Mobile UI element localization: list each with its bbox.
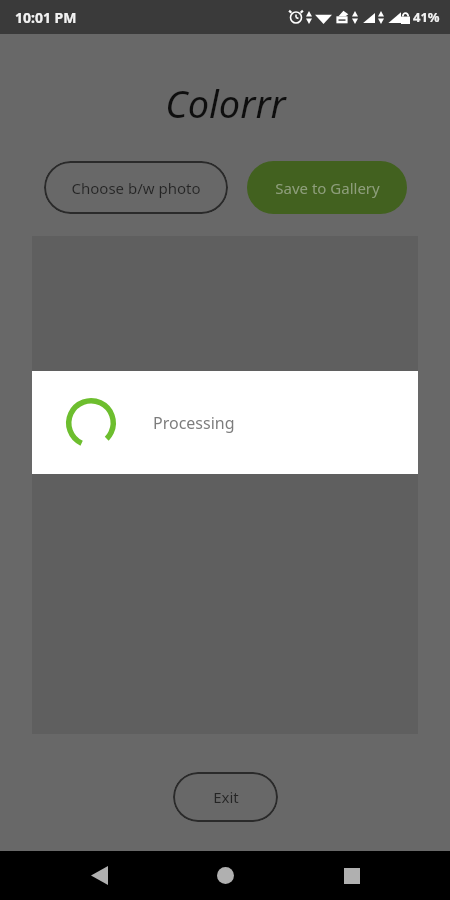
button[interactable]: Choose b/w photo bbox=[44, 161, 228, 214]
staticText: Choose b/w photo bbox=[71, 178, 201, 198]
button[interactable]: Recents bbox=[324, 851, 380, 900]
button[interactable]: Back bbox=[71, 851, 127, 900]
staticText: Save to Gallery bbox=[275, 178, 380, 198]
staticText: Colorrr bbox=[165, 77, 286, 129]
staticText: 10:01 PM bbox=[15, 8, 77, 27]
button[interactable]: Home bbox=[197, 851, 253, 900]
button[interactable]: Save to Gallery bbox=[247, 161, 407, 214]
staticText: Processing bbox=[153, 412, 235, 434]
button[interactable]: Exit bbox=[173, 772, 278, 822]
staticText: Exit bbox=[213, 787, 239, 807]
staticText: 41% bbox=[413, 8, 440, 26]
